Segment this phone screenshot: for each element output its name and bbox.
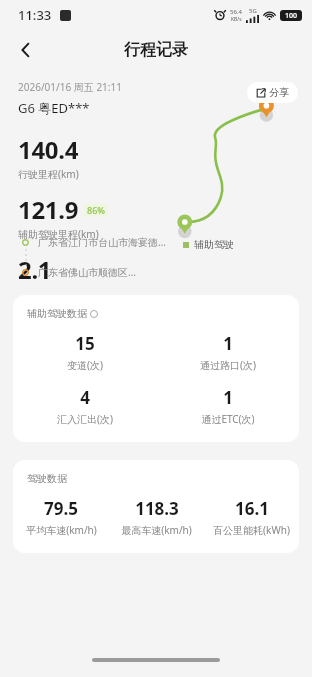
staticText: 辅助驾驶数据 — [27, 307, 87, 320]
staticText: 140.4 — [18, 133, 79, 166]
staticText: KB/s — [231, 16, 242, 23]
staticText: G6 粤ED*** — [18, 99, 90, 117]
staticText: 通过ETC(次) — [201, 412, 255, 426]
staticText: 56.4 — [230, 8, 242, 16]
staticText: 16.1 — [235, 497, 269, 520]
button[interactable]: 分享 — [247, 82, 298, 103]
staticText: 平均车速(km/h) — [26, 523, 97, 537]
button[interactable]: 驾驶数据 — [13, 460, 299, 553]
staticText: 86% — [87, 204, 105, 216]
staticText: 15 — [75, 332, 95, 355]
staticText: 100 — [285, 11, 298, 21]
staticText: 11:33 — [18, 6, 52, 24]
staticText: 5G — [249, 7, 257, 15]
staticText: 汇入汇出(次) — [57, 412, 113, 426]
staticText: 2026/01/16 周五 21:11 — [18, 80, 122, 94]
staticText: 1 — [223, 386, 233, 409]
staticText: 驾驶数据 — [27, 472, 67, 485]
staticText: 变道(次) — [67, 358, 103, 372]
staticText: 121.9 — [18, 193, 79, 226]
staticText: 通过路口(次) — [200, 358, 256, 372]
staticText: 辅助驾驶 — [194, 238, 234, 251]
button[interactable]: Back — [8, 32, 44, 68]
staticText: 1 — [223, 332, 233, 355]
staticText: 4 — [80, 386, 90, 409]
staticText: 行驶里程(km) — [18, 167, 79, 181]
staticText: 分享 — [269, 86, 289, 99]
button[interactable]: 辅助驾驶数据 — [13, 295, 299, 442]
staticText: 辅助驾驶里程(km) — [18, 227, 99, 241]
staticText: 2.1 — [18, 253, 52, 285]
staticText: 最高车速(km/h) — [121, 523, 192, 537]
staticText: 百公里能耗(kWh) — [213, 523, 290, 537]
staticText: 广东省江门市台山市海宴德… — [38, 235, 166, 249]
staticText: 广东省佛山市顺德区… — [38, 265, 136, 279]
staticText: 79.5 — [44, 497, 78, 520]
staticText: 行程记录 — [124, 40, 188, 60]
staticText: 118.3 — [135, 497, 179, 520]
